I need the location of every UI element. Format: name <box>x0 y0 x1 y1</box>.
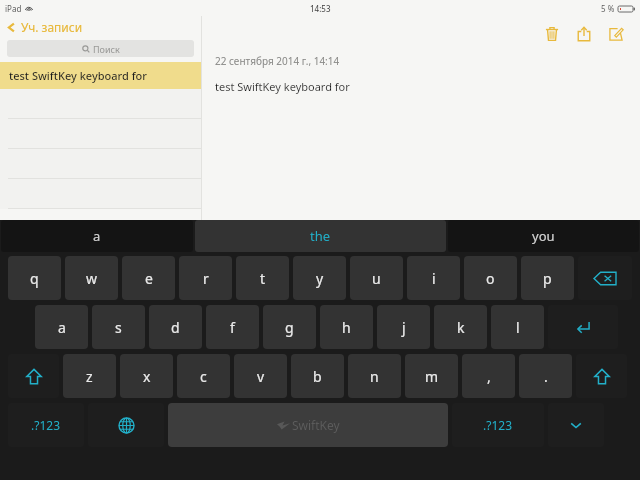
button[interactable]: b <box>291 354 344 398</box>
staticText: g <box>285 318 294 337</box>
button[interactable]: f <box>206 305 259 349</box>
staticText: u <box>372 269 381 288</box>
staticText: .?123 <box>31 417 61 433</box>
staticText: , <box>487 367 491 386</box>
button[interactable]: e <box>122 256 175 300</box>
staticText: 22 сентября 2014 г., 14:14 <box>215 54 340 68</box>
button[interactable]: u <box>350 256 403 300</box>
button[interactable]: Return <box>548 305 618 349</box>
button[interactable]: r <box>179 256 232 300</box>
staticText: a <box>93 227 101 245</box>
button[interactable]: q <box>8 256 61 300</box>
staticText: h <box>342 318 351 337</box>
staticText: you <box>532 227 555 245</box>
staticText: Уч. записи <box>21 19 83 35</box>
staticText: s <box>115 318 122 337</box>
button[interactable]: m <box>405 354 458 398</box>
button[interactable]: a <box>1 220 193 252</box>
button[interactable]: j <box>377 305 430 349</box>
staticText: b <box>313 367 322 386</box>
staticText: z <box>86 367 93 386</box>
staticText: j <box>402 318 406 337</box>
button[interactable]: Уч. записи <box>0 16 201 38</box>
button[interactable]: Share <box>568 18 600 50</box>
button[interactable]: c <box>177 354 230 398</box>
button[interactable]: Compose <box>600 18 632 50</box>
button[interactable]: Delete <box>536 18 568 50</box>
button[interactable]: a <box>35 305 88 349</box>
staticText: a <box>58 318 66 337</box>
staticText: e <box>145 269 153 288</box>
staticText: m <box>425 367 439 386</box>
button[interactable]: y <box>293 256 346 300</box>
button[interactable]: h <box>320 305 373 349</box>
button[interactable]: . <box>519 354 572 398</box>
staticText: Поиск <box>93 43 120 55</box>
button[interactable]: Backspace <box>578 256 632 300</box>
staticText: iPad <box>5 3 22 14</box>
staticText: . <box>544 367 548 386</box>
staticText: SwiftKey <box>292 417 340 433</box>
button[interactable]: w <box>65 256 118 300</box>
staticText: o <box>486 269 495 288</box>
button[interactable]: SwiftKey <box>168 403 448 447</box>
staticText: y <box>316 269 324 288</box>
button[interactable]: Hide keyboard <box>548 403 604 447</box>
button[interactable]: , <box>462 354 515 398</box>
button[interactable]: d <box>149 305 202 349</box>
button[interactable]: .?123 <box>452 403 544 447</box>
button[interactable]: o <box>464 256 517 300</box>
button[interactable]: v <box>234 354 287 398</box>
button[interactable]: z <box>63 354 116 398</box>
staticText: k <box>457 318 465 337</box>
button[interactable]: Shift <box>8 354 59 398</box>
staticText: r <box>203 269 209 288</box>
button[interactable]: i <box>407 256 460 300</box>
button[interactable]: test SwiftKey keyboard for <box>0 62 201 89</box>
staticText: 5 % <box>601 3 615 14</box>
staticText: test SwiftKey keyboard for <box>9 68 147 83</box>
button[interactable]: n <box>348 354 401 398</box>
button[interactable]: p <box>521 256 574 300</box>
staticText: l <box>516 318 520 337</box>
staticText: v <box>257 367 265 386</box>
button[interactable]: l <box>491 305 544 349</box>
staticText: .?123 <box>483 417 513 433</box>
button[interactable]: Change keyboard <box>88 403 164 447</box>
staticText: i <box>432 269 436 288</box>
button[interactable]: g <box>263 305 316 349</box>
button[interactable]: x <box>120 354 173 398</box>
button[interactable]: k <box>434 305 487 349</box>
button[interactable]: Shift <box>576 354 627 398</box>
button[interactable]: t <box>236 256 289 300</box>
staticText: x <box>143 367 151 386</box>
staticText: test SwiftKey keyboard for <box>215 79 350 94</box>
staticText: d <box>171 318 180 337</box>
staticText: c <box>200 367 207 386</box>
staticText: n <box>370 367 379 386</box>
button[interactable]: you <box>448 220 639 252</box>
button[interactable]: the <box>195 220 446 252</box>
staticText: t <box>260 269 266 288</box>
button[interactable]: .?123 <box>8 403 84 447</box>
staticText: 14:53 <box>310 3 331 14</box>
staticText: the <box>310 227 331 245</box>
button[interactable]: s <box>92 305 145 349</box>
staticText: w <box>86 269 98 288</box>
button[interactable]: Поиск <box>7 40 194 57</box>
staticText: q <box>30 269 39 288</box>
staticText: p <box>543 269 552 288</box>
staticText: f <box>230 318 235 337</box>
